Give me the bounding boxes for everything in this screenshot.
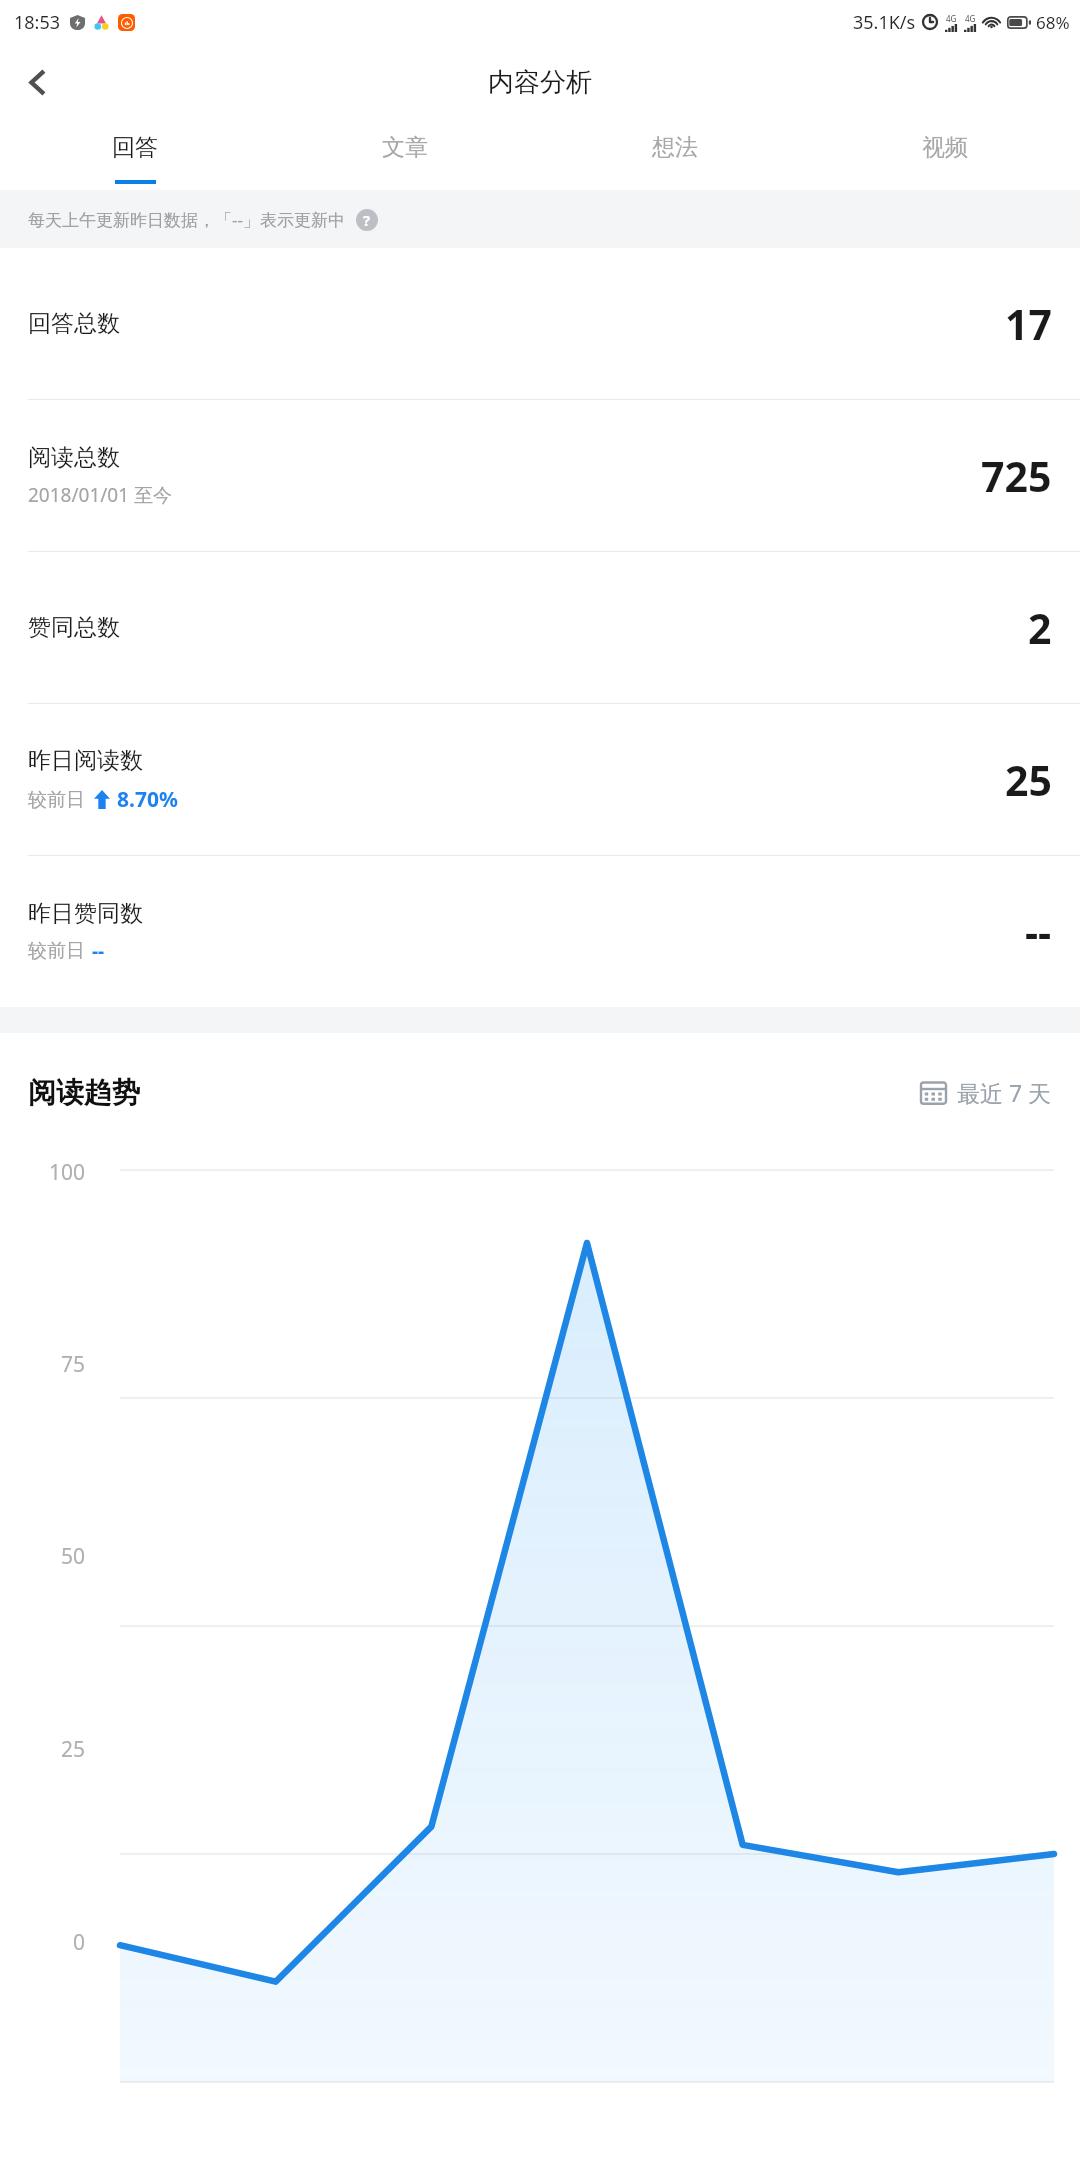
staticText: 35.1K/s <box>853 10 916 35</box>
staticText: 回答总数 <box>28 309 120 338</box>
staticText: 昨日阅读数 <box>28 746 143 775</box>
button[interactable]: 视频 <box>810 120 1080 190</box>
staticText: 每天上午更新昨日数据，「--」表示更新中 <box>28 208 345 231</box>
button[interactable]: 文章 <box>270 120 540 190</box>
staticText: 较前日 <box>28 788 85 812</box>
button[interactable]: 回答总数 <box>0 248 1080 399</box>
staticText: 68% <box>1036 11 1070 34</box>
button[interactable]: 赞同总数 <box>0 552 1080 703</box>
staticText: 视频 <box>922 133 968 162</box>
staticText: ? <box>363 210 371 230</box>
button[interactable]: 回答 <box>0 120 270 190</box>
other: Date range <box>921 1080 946 1105</box>
staticText: 18:53 <box>14 10 61 35</box>
staticText: 阅读趋势 <box>28 1075 140 1110</box>
staticText: 4G <box>946 13 957 24</box>
staticText: 17 <box>1005 296 1052 352</box>
staticText: 较前日 <box>28 939 85 963</box>
staticText: -- <box>92 938 105 964</box>
button[interactable]: Date range <box>921 1077 1052 1108</box>
staticText: 2018/01/01 至今 <box>28 482 173 508</box>
staticText: 文章 <box>382 133 428 162</box>
staticText: 赞同总数 <box>28 613 120 642</box>
staticText: 50 <box>0 1542 85 1571</box>
staticText: -- <box>1025 904 1052 960</box>
staticText: 想法 <box>652 133 698 162</box>
staticText: 25 <box>1005 752 1052 808</box>
staticText: 25 <box>0 1735 85 1764</box>
button[interactable]: Back <box>8 52 68 112</box>
staticText: 4G <box>965 13 976 24</box>
staticText: 阅读总数 <box>28 443 120 472</box>
staticText: 最近 7 天 <box>957 1077 1052 1108</box>
staticText: 内容分析 <box>488 66 592 99</box>
staticText: 2 <box>1028 600 1052 656</box>
staticText: 0 <box>0 1928 85 1957</box>
staticText: 100 <box>0 1158 85 1187</box>
button[interactable]: 每天上午更新昨日数据，「--」表示更新中 <box>0 190 1080 248</box>
staticText: 回答 <box>112 133 158 162</box>
button[interactable]: 阅读总数 <box>0 400 1080 551</box>
button[interactable]: 想法 <box>540 120 810 190</box>
staticText: 75 <box>0 1350 85 1379</box>
staticText: 8.70% <box>117 785 178 814</box>
staticText: 昨日赞同数 <box>28 899 143 928</box>
button[interactable]: 昨日赞同数 <box>0 856 1080 1007</box>
button[interactable]: 昨日阅读数 <box>0 704 1080 855</box>
staticText: 725 <box>981 448 1052 504</box>
